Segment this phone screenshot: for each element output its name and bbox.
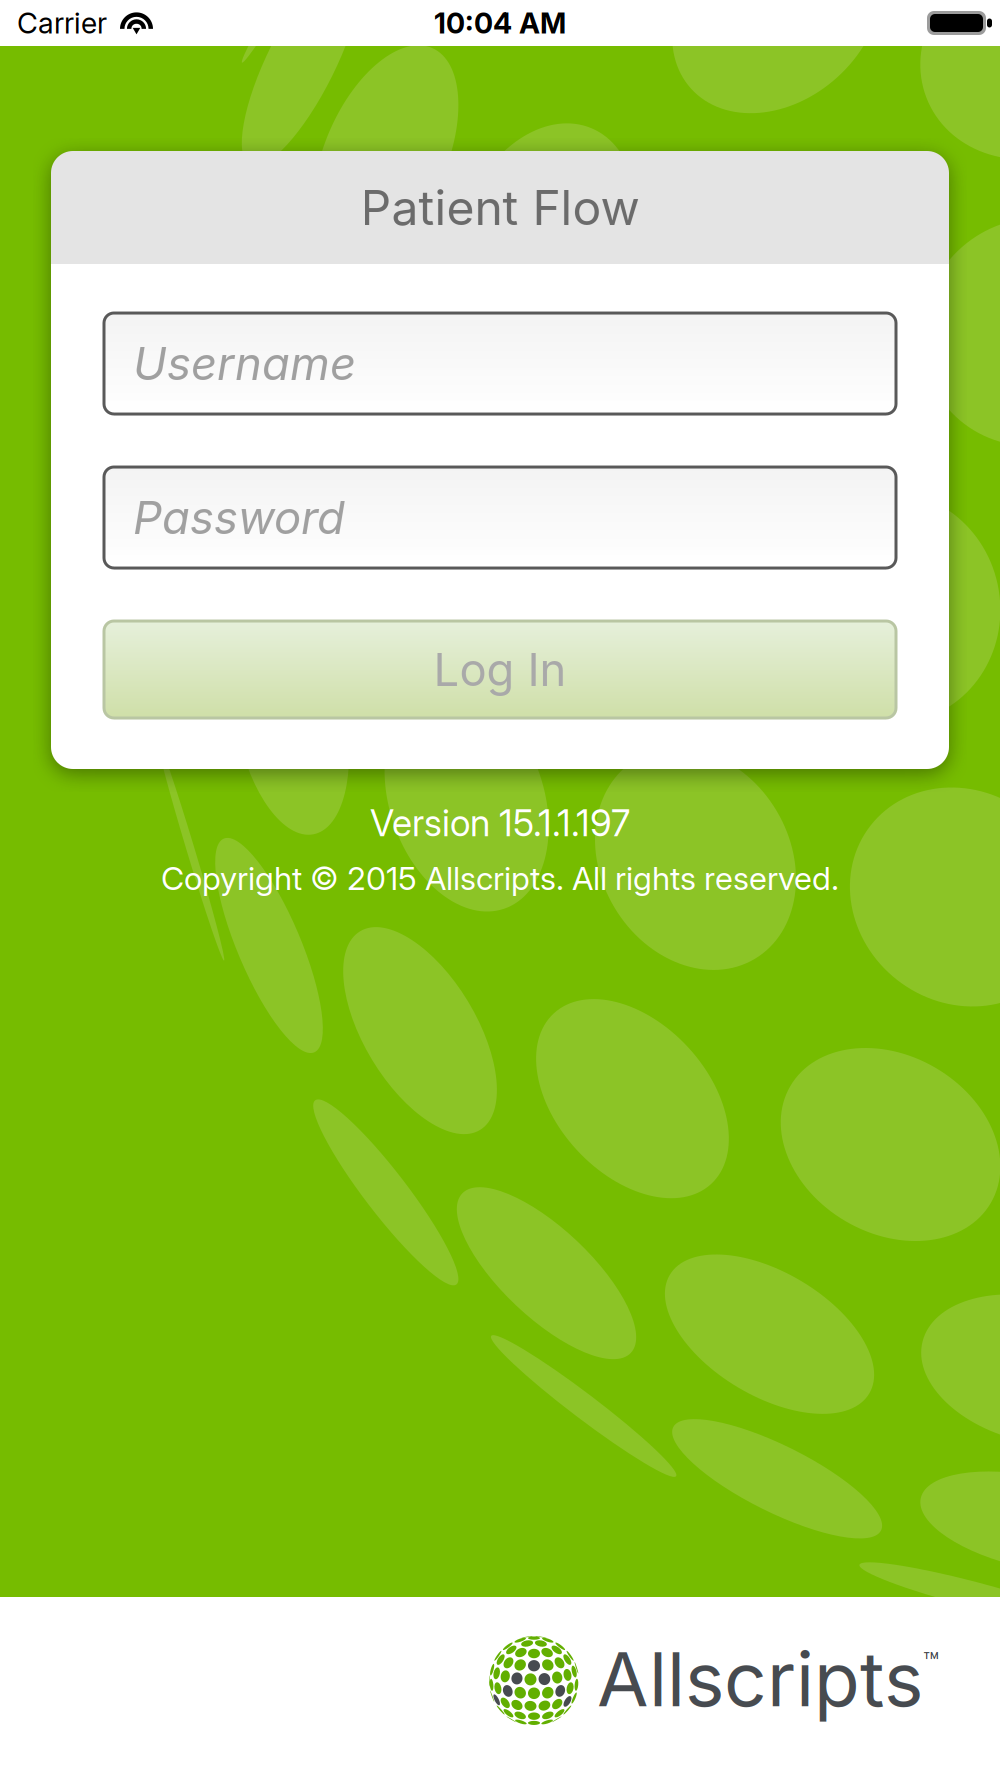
- staticText: Carrier: [17, 6, 107, 40]
- staticText: Patient Flow: [360, 178, 639, 237]
- staticText: Version 15.1.1.197: [370, 801, 630, 845]
- staticText: Username: [133, 336, 356, 391]
- staticText: Log In: [433, 642, 566, 697]
- staticText: 10:04 AM: [434, 6, 566, 40]
- staticText: Allscripts: [597, 1634, 923, 1724]
- staticText: Copyright © 2015 Allscripts. All rights …: [161, 859, 839, 898]
- button[interactable]: Log In: [104, 621, 896, 718]
- staticText: ™: [923, 1645, 939, 1678]
- staticText: Password: [133, 490, 345, 545]
